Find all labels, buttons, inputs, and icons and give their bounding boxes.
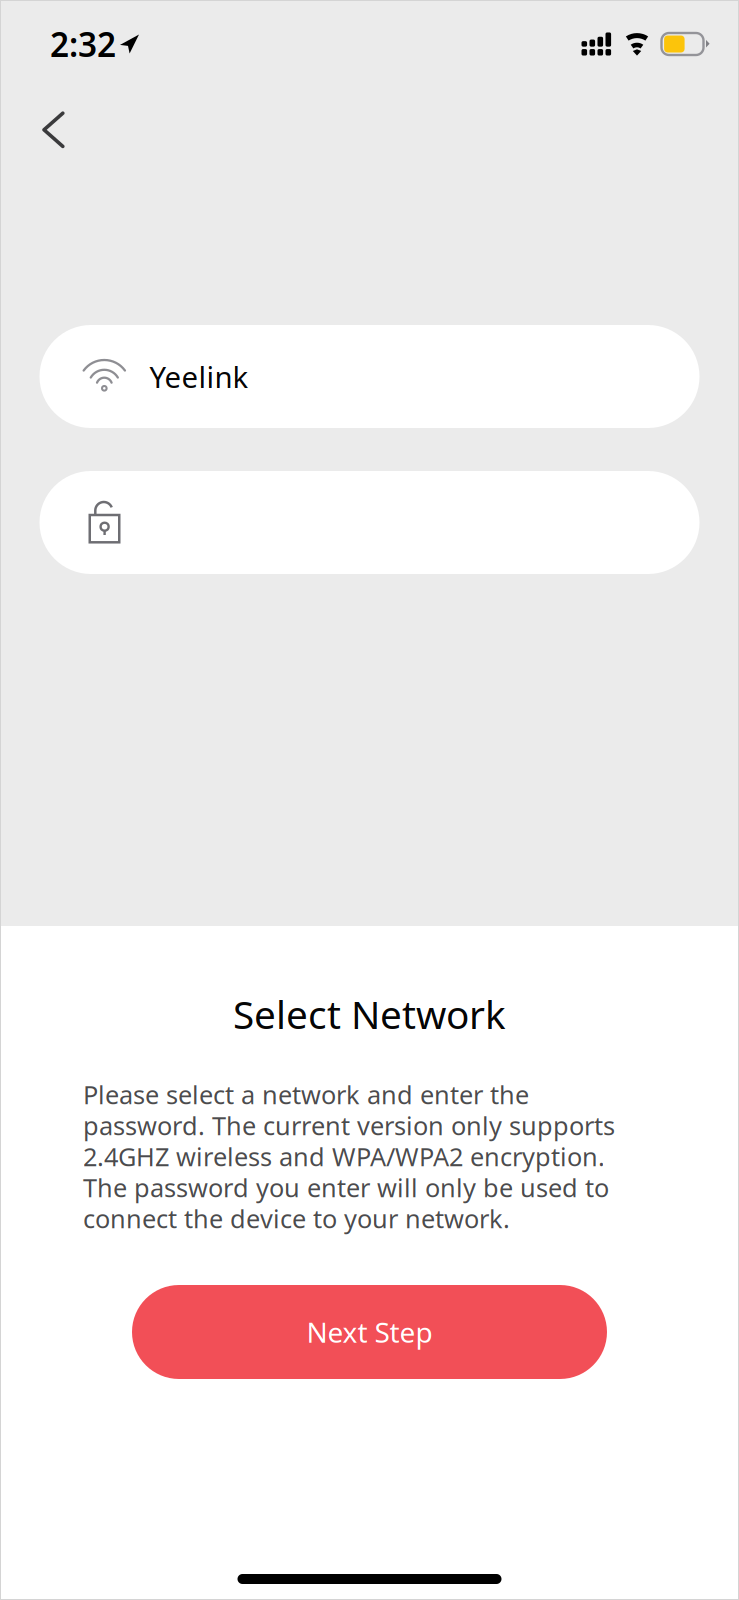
staticText: Please select a network and enter the xyxy=(83,1078,529,1111)
staticText: Select Network xyxy=(233,988,506,1040)
staticText: 2.4GHZ wireless and WPA/WPA2 encryption. xyxy=(83,1140,605,1173)
button[interactable]: Wi-Fi network, Yeelink xyxy=(39,325,699,428)
staticText: The password you enter will only be used… xyxy=(83,1171,609,1204)
button[interactable]: Next Step xyxy=(132,1285,607,1379)
button[interactable]: Back xyxy=(17,88,86,169)
button[interactable]: Password xyxy=(39,471,699,574)
staticText: password. The current version only suppo… xyxy=(83,1109,615,1142)
staticText: connect the device to your network. xyxy=(83,1202,510,1235)
staticText: 2:32 xyxy=(50,22,116,66)
staticText: Next Step xyxy=(306,1313,432,1351)
staticText: Yeelink xyxy=(149,357,248,396)
